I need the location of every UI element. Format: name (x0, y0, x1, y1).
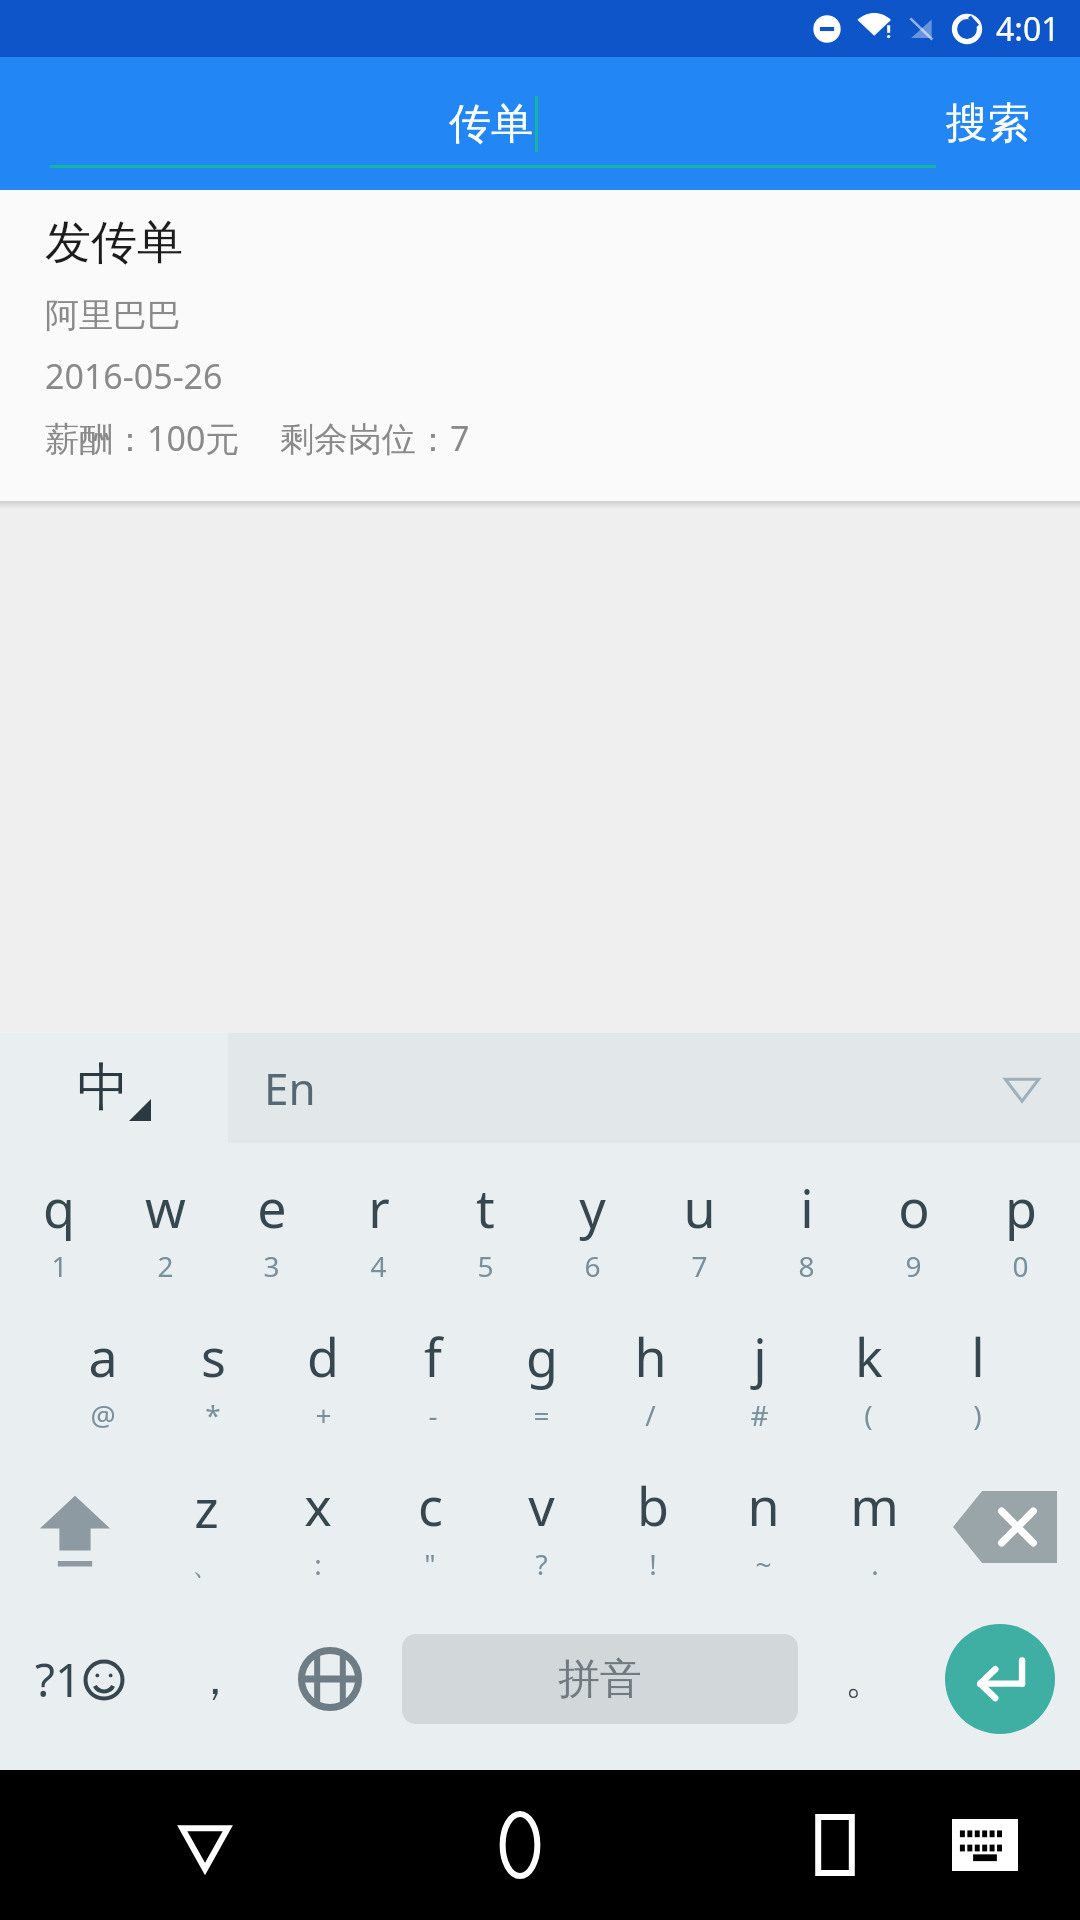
staticText: : (314, 1545, 322, 1583)
button[interactable]: Shift (0, 1459, 150, 1594)
staticText: c (418, 1470, 443, 1541)
button[interactable]: c (374, 1459, 486, 1594)
other: Expand candidates (1000, 1066, 1044, 1110)
staticText: ?1 (35, 1648, 82, 1711)
staticText: / (645, 1396, 656, 1434)
staticText: ? (535, 1545, 548, 1583)
button[interactable]: Keyboard (930, 1790, 1040, 1900)
button[interactable]: h (596, 1310, 705, 1445)
staticText: 中 (77, 1055, 129, 1121)
staticText: u (683, 1172, 716, 1243)
staticText: = (533, 1396, 550, 1434)
button[interactable]: t (432, 1161, 539, 1296)
staticText: 2 (157, 1247, 174, 1285)
button[interactable]: a (48, 1310, 158, 1445)
staticText: 1 (51, 1247, 68, 1285)
staticText: 4 (370, 1247, 387, 1285)
button[interactable]: q (6, 1161, 112, 1296)
button[interactable]: n (708, 1459, 819, 1594)
button[interactable]: Home (465, 1790, 575, 1900)
button[interactable]: u (646, 1161, 753, 1296)
button[interactable]: En (228, 1033, 1080, 1143)
staticText: l (971, 1321, 985, 1392)
staticText: 搜索 (946, 97, 1030, 150)
staticText: i (800, 1172, 814, 1243)
button[interactable]: x (262, 1459, 374, 1594)
staticText: 6 (584, 1247, 601, 1285)
button[interactable]: s (158, 1310, 268, 1445)
staticText: e (257, 1172, 287, 1243)
button[interactable]: 拼音 (402, 1634, 798, 1724)
staticText: 4:01 (996, 7, 1060, 51)
button[interactable]: j (705, 1310, 814, 1445)
button[interactable]: o (860, 1161, 967, 1296)
staticText: z (194, 1472, 219, 1543)
button[interactable]: Symbols and emoji (0, 1604, 160, 1754)
staticText: g (526, 1321, 558, 1392)
button[interactable]: Recents (780, 1790, 890, 1900)
staticText: 薪酬：100元 (45, 415, 240, 461)
staticText: " (424, 1545, 436, 1583)
staticText: ， (193, 1652, 237, 1707)
staticText: n (747, 1470, 780, 1541)
button[interactable]: w (112, 1161, 218, 1296)
staticText: 、 (192, 1547, 220, 1582)
staticText: 拼音 (558, 1653, 642, 1706)
staticText: ~ (755, 1545, 772, 1583)
button[interactable]: ， (160, 1604, 270, 1754)
button[interactable]: f (378, 1310, 487, 1445)
staticText: . (871, 1545, 879, 1583)
staticText: + (315, 1396, 332, 1434)
button[interactable]: r (325, 1161, 432, 1296)
staticText: t (476, 1172, 495, 1243)
staticText: # (750, 1396, 769, 1434)
staticText: ! (649, 1545, 657, 1583)
staticText: @ (90, 1396, 116, 1434)
staticText: y (579, 1172, 606, 1243)
staticText: 9 (905, 1247, 922, 1285)
staticText: * (205, 1396, 221, 1434)
button[interactable]: d (268, 1310, 378, 1445)
staticText: o (898, 1172, 930, 1243)
button[interactable]: b (597, 1459, 708, 1594)
staticText: m (850, 1470, 899, 1541)
button[interactable]: l (923, 1310, 1032, 1445)
button[interactable]: z (150, 1459, 262, 1594)
button[interactable]: k (814, 1310, 923, 1445)
button[interactable]: Switch to Chinese (0, 1033, 228, 1143)
button[interactable]: Back (150, 1790, 260, 1900)
staticText: 剩余岗位：7 (280, 415, 470, 461)
staticText: 0 (1012, 1247, 1029, 1285)
button[interactable]: y (539, 1161, 646, 1296)
staticText: r (368, 1172, 390, 1243)
button[interactable]: Backspace (930, 1459, 1080, 1594)
button[interactable]: Change keyboard language (270, 1604, 390, 1754)
button[interactable]: v (486, 1459, 597, 1594)
staticText: 8 (798, 1247, 815, 1285)
button[interactable]: e (218, 1161, 325, 1296)
staticText: b (637, 1470, 669, 1541)
button[interactable]: i (753, 1161, 860, 1296)
staticText: d (307, 1321, 339, 1392)
button[interactable]: m (819, 1459, 930, 1594)
staticText: w (145, 1172, 186, 1243)
button[interactable]: 发传单 (0, 190, 1080, 501)
staticText: q (43, 1172, 75, 1243)
staticText: f (424, 1321, 442, 1392)
staticText: s (201, 1321, 226, 1392)
staticText: En (264, 1058, 316, 1118)
button[interactable]: 搜索 (936, 87, 1040, 160)
staticText: j (753, 1321, 767, 1392)
staticText: 发传单 (45, 214, 183, 272)
staticText: k (855, 1321, 883, 1392)
staticText: v (528, 1470, 555, 1541)
staticText: 2016-05-26 (45, 353, 223, 399)
staticText: 。 (845, 1654, 885, 1704)
button[interactable]: Enter (945, 1624, 1055, 1734)
staticText: ( (864, 1396, 873, 1434)
button[interactable]: p (967, 1161, 1074, 1296)
staticText: 7 (691, 1247, 708, 1285)
button[interactable]: 。 (810, 1604, 920, 1754)
button[interactable]: g (487, 1310, 596, 1445)
staticText: 传单 (449, 98, 533, 151)
